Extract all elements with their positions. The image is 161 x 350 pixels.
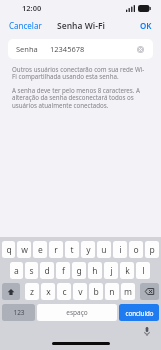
staticText: y bbox=[86, 244, 91, 256]
staticText: q bbox=[6, 244, 12, 256]
staticText: t bbox=[70, 244, 74, 256]
staticText: 123 bbox=[13, 308, 25, 317]
staticText: 12345678 bbox=[50, 44, 85, 54]
button[interactable]: espaço bbox=[37, 304, 117, 321]
button[interactable]: t bbox=[65, 241, 79, 258]
staticText: j bbox=[110, 265, 113, 277]
button[interactable]: j bbox=[104, 262, 118, 279]
button[interactable]: x bbox=[41, 283, 55, 300]
button[interactable]: h bbox=[88, 262, 102, 279]
button[interactable]: e bbox=[33, 241, 47, 258]
staticText: concluído bbox=[125, 309, 154, 317]
staticText: a bbox=[14, 265, 19, 277]
button[interactable]: v bbox=[73, 283, 87, 300]
staticText: p bbox=[149, 244, 155, 256]
staticText: s bbox=[29, 265, 34, 277]
staticText: w bbox=[21, 244, 28, 256]
staticText: Cancelar bbox=[9, 20, 42, 31]
staticText: l bbox=[142, 265, 145, 277]
staticText: k bbox=[125, 265, 130, 277]
staticText: f bbox=[62, 265, 65, 277]
staticText: e bbox=[38, 244, 43, 256]
staticText: g bbox=[76, 265, 82, 277]
button[interactable]: n bbox=[105, 283, 119, 300]
button[interactable]: w bbox=[17, 241, 31, 258]
staticText: h bbox=[92, 265, 98, 277]
staticText: Outros usuários conectarão com sua rede … bbox=[12, 65, 149, 81]
button[interactable]: p bbox=[145, 241, 159, 258]
staticText: r bbox=[54, 244, 58, 256]
button[interactable]: g bbox=[72, 262, 86, 279]
button[interactable]: z bbox=[25, 283, 39, 300]
button[interactable]: f bbox=[56, 262, 70, 279]
button[interactable]: b bbox=[89, 283, 103, 300]
button[interactable]: r bbox=[49, 241, 63, 258]
staticText: n bbox=[109, 286, 115, 298]
staticText: v bbox=[78, 286, 83, 298]
button[interactable]: a bbox=[10, 262, 23, 279]
staticText: b bbox=[93, 286, 99, 298]
button[interactable]: concluído bbox=[119, 304, 159, 321]
button[interactable]: Apagar bbox=[140, 283, 159, 300]
button[interactable]: Ditado bbox=[141, 325, 153, 337]
button[interactable]: Senha bbox=[8, 39, 153, 59]
staticText: z bbox=[30, 286, 34, 298]
button[interactable]: y bbox=[81, 241, 95, 258]
staticText: x bbox=[46, 286, 51, 298]
button[interactable]: Limpar texto bbox=[136, 45, 145, 54]
button[interactable]: q bbox=[2, 241, 15, 258]
staticText: Senha bbox=[16, 44, 38, 54]
button[interactable]: c bbox=[57, 283, 71, 300]
button[interactable]: 123 bbox=[2, 304, 35, 321]
button[interactable]: o bbox=[129, 241, 143, 258]
staticText: Senha Wi-Fi bbox=[57, 20, 105, 32]
staticText: espaço bbox=[66, 308, 88, 317]
button[interactable]: l bbox=[136, 262, 150, 279]
staticText: o bbox=[133, 244, 139, 256]
staticText: 12:00 bbox=[22, 3, 42, 13]
staticText: c bbox=[62, 286, 67, 298]
button[interactable]: s bbox=[25, 262, 38, 279]
button[interactable]: OK bbox=[131, 17, 161, 34]
button[interactable]: d bbox=[40, 262, 54, 279]
button[interactable]: i bbox=[113, 241, 127, 258]
staticText: d bbox=[44, 265, 50, 277]
button[interactable]: k bbox=[120, 262, 134, 279]
staticText: A senha deve ter pelo menos 8 caracteres… bbox=[12, 86, 149, 110]
button[interactable]: u bbox=[97, 241, 111, 258]
button[interactable]: Shift bbox=[2, 283, 20, 300]
staticText: i bbox=[119, 244, 122, 256]
button[interactable]: Cancelar bbox=[0, 17, 51, 34]
staticText: OK bbox=[140, 20, 152, 31]
staticText: m bbox=[124, 286, 132, 298]
button[interactable]: m bbox=[121, 283, 135, 300]
staticText: u bbox=[101, 244, 107, 256]
